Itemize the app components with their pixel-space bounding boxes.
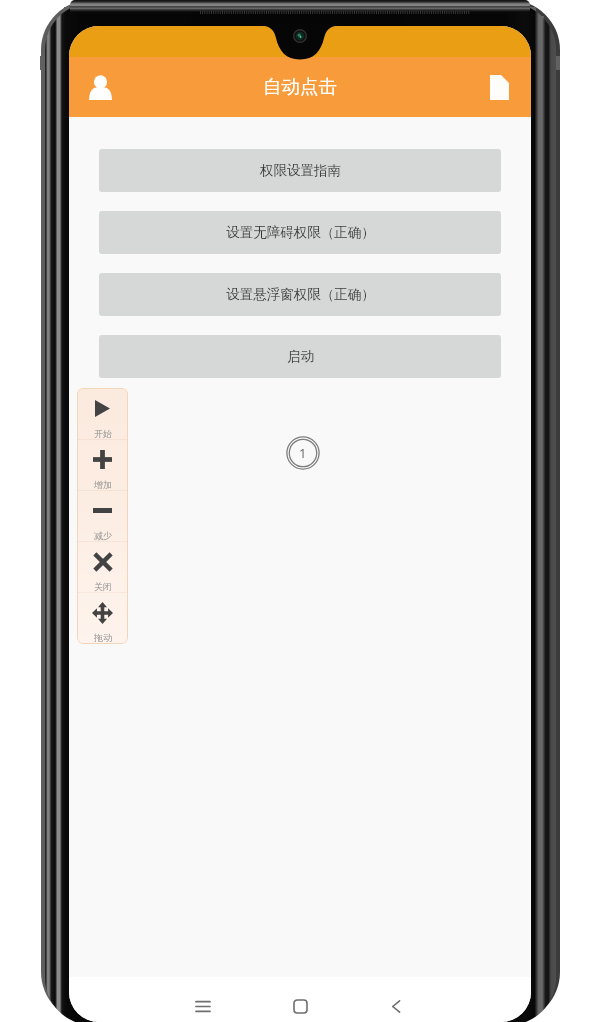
staticText: 设置无障碍权限（正确） bbox=[226, 224, 375, 241]
button[interactable]: Recent apps bbox=[181, 984, 225, 1022]
staticText: 拖动 bbox=[94, 632, 112, 643]
button[interactable]: 关闭 bbox=[77, 541, 128, 592]
staticText: 自动点击 bbox=[263, 75, 337, 98]
button[interactable]: 开始 bbox=[77, 388, 128, 439]
button[interactable]: 减少 bbox=[77, 490, 128, 541]
staticText: 开始 bbox=[94, 428, 112, 439]
button[interactable]: 拖动 bbox=[77, 592, 128, 643]
staticText: 增加 bbox=[94, 479, 112, 490]
button[interactable]: 设置悬浮窗权限（正确） bbox=[99, 273, 501, 316]
button[interactable]: 增加 bbox=[77, 439, 128, 490]
staticText: 启动 bbox=[287, 348, 314, 365]
button[interactable]: Account bbox=[77, 64, 123, 110]
staticText: 设置悬浮窗权限（正确） bbox=[226, 286, 375, 303]
button[interactable]: 启动 bbox=[99, 335, 501, 378]
staticText: 权限设置指南 bbox=[260, 162, 341, 179]
button[interactable]: 设置无障碍权限（正确） bbox=[99, 211, 501, 254]
button[interactable]: Home bbox=[278, 984, 322, 1022]
button[interactable]: Back bbox=[374, 984, 418, 1022]
button[interactable]: 权限设置指南 bbox=[99, 149, 501, 192]
staticText: 减少 bbox=[94, 530, 112, 541]
staticText: 关闭 bbox=[94, 581, 112, 592]
button[interactable]: Document bbox=[476, 64, 522, 110]
staticText: 1 bbox=[299, 444, 307, 462]
